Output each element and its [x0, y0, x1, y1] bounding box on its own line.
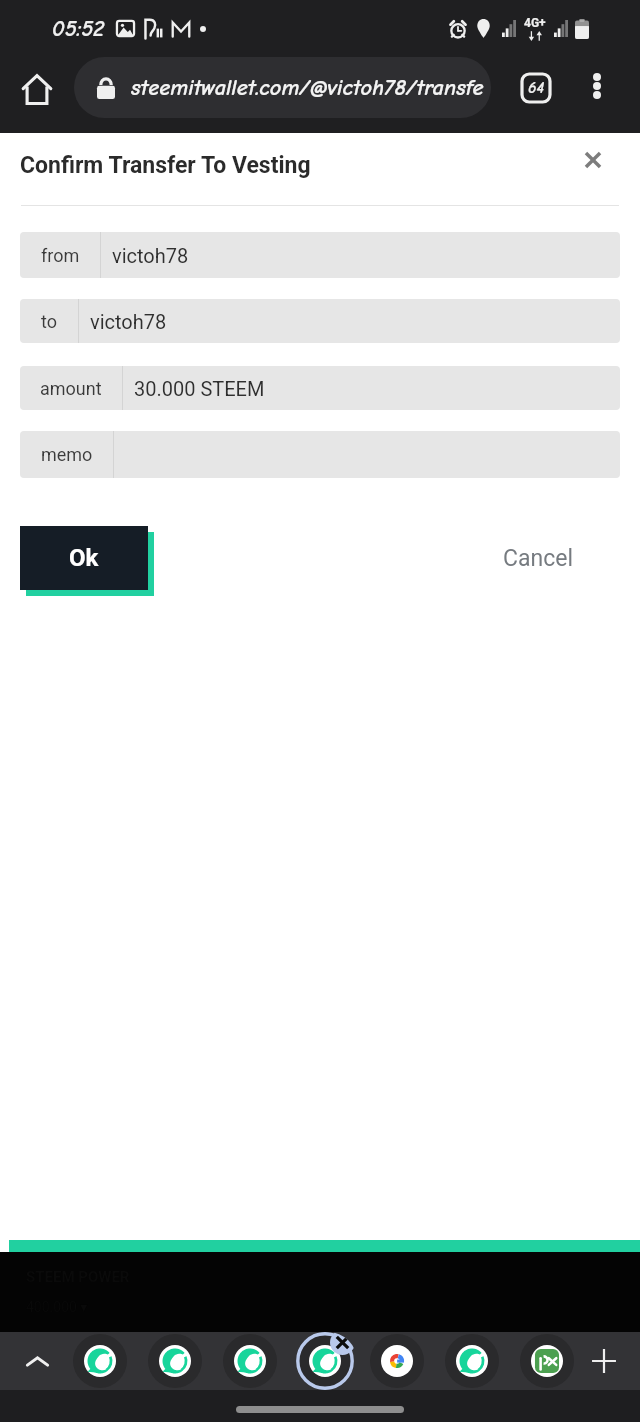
- button[interactable]: Ok: [20, 526, 148, 590]
- button[interactable]: Tab: [218, 1332, 282, 1390]
- staticText: 05:52: [52, 16, 105, 41]
- staticText: 4G+: [524, 16, 546, 30]
- staticText: to: [41, 311, 57, 332]
- staticText: Ok: [69, 544, 99, 572]
- button[interactable]: Expand tabs: [15, 1339, 59, 1383]
- button[interactable]: Close: [573, 143, 613, 177]
- button[interactable]: Close tab: [330, 1332, 355, 1355]
- button[interactable]: More options: [574, 63, 619, 108]
- staticText: Confirm Transfer To Vesting: [20, 152, 311, 179]
- button[interactable]: from: [20, 232, 620, 278]
- button[interactable]: Cancel: [495, 539, 582, 578]
- staticText: 64: [528, 79, 545, 97]
- staticText: Cancel: [503, 545, 574, 572]
- button[interactable]: Tab: [515, 1332, 579, 1390]
- staticText: memo: [41, 444, 93, 465]
- button[interactable]: Tab: [365, 1332, 429, 1390]
- button[interactable]: New tab: [582, 1339, 626, 1383]
- button[interactable]: to: [20, 299, 620, 343]
- staticText: amount: [40, 378, 102, 399]
- button[interactable]: Tab: [68, 1332, 132, 1390]
- button[interactable]: amount: [20, 366, 620, 410]
- staticText: from: [41, 245, 80, 266]
- button[interactable]: Tab: [143, 1332, 207, 1390]
- button[interactable]: Tab: [293, 1332, 357, 1390]
- staticText: victoh78: [90, 310, 167, 333]
- button[interactable]: Tab: [440, 1332, 504, 1390]
- button[interactable]: Home: [9, 61, 65, 117]
- button[interactable]: steemitwallet.com/@victoh78/transfe: [74, 57, 491, 118]
- button[interactable]: Tabs: [514, 66, 558, 110]
- staticText: steemitwallet.com/@victoh78/transfe: [131, 75, 484, 101]
- staticText: 30.000 STEEM: [134, 377, 265, 400]
- staticText: victoh78: [112, 244, 189, 267]
- button[interactable]: memo: [20, 431, 620, 478]
